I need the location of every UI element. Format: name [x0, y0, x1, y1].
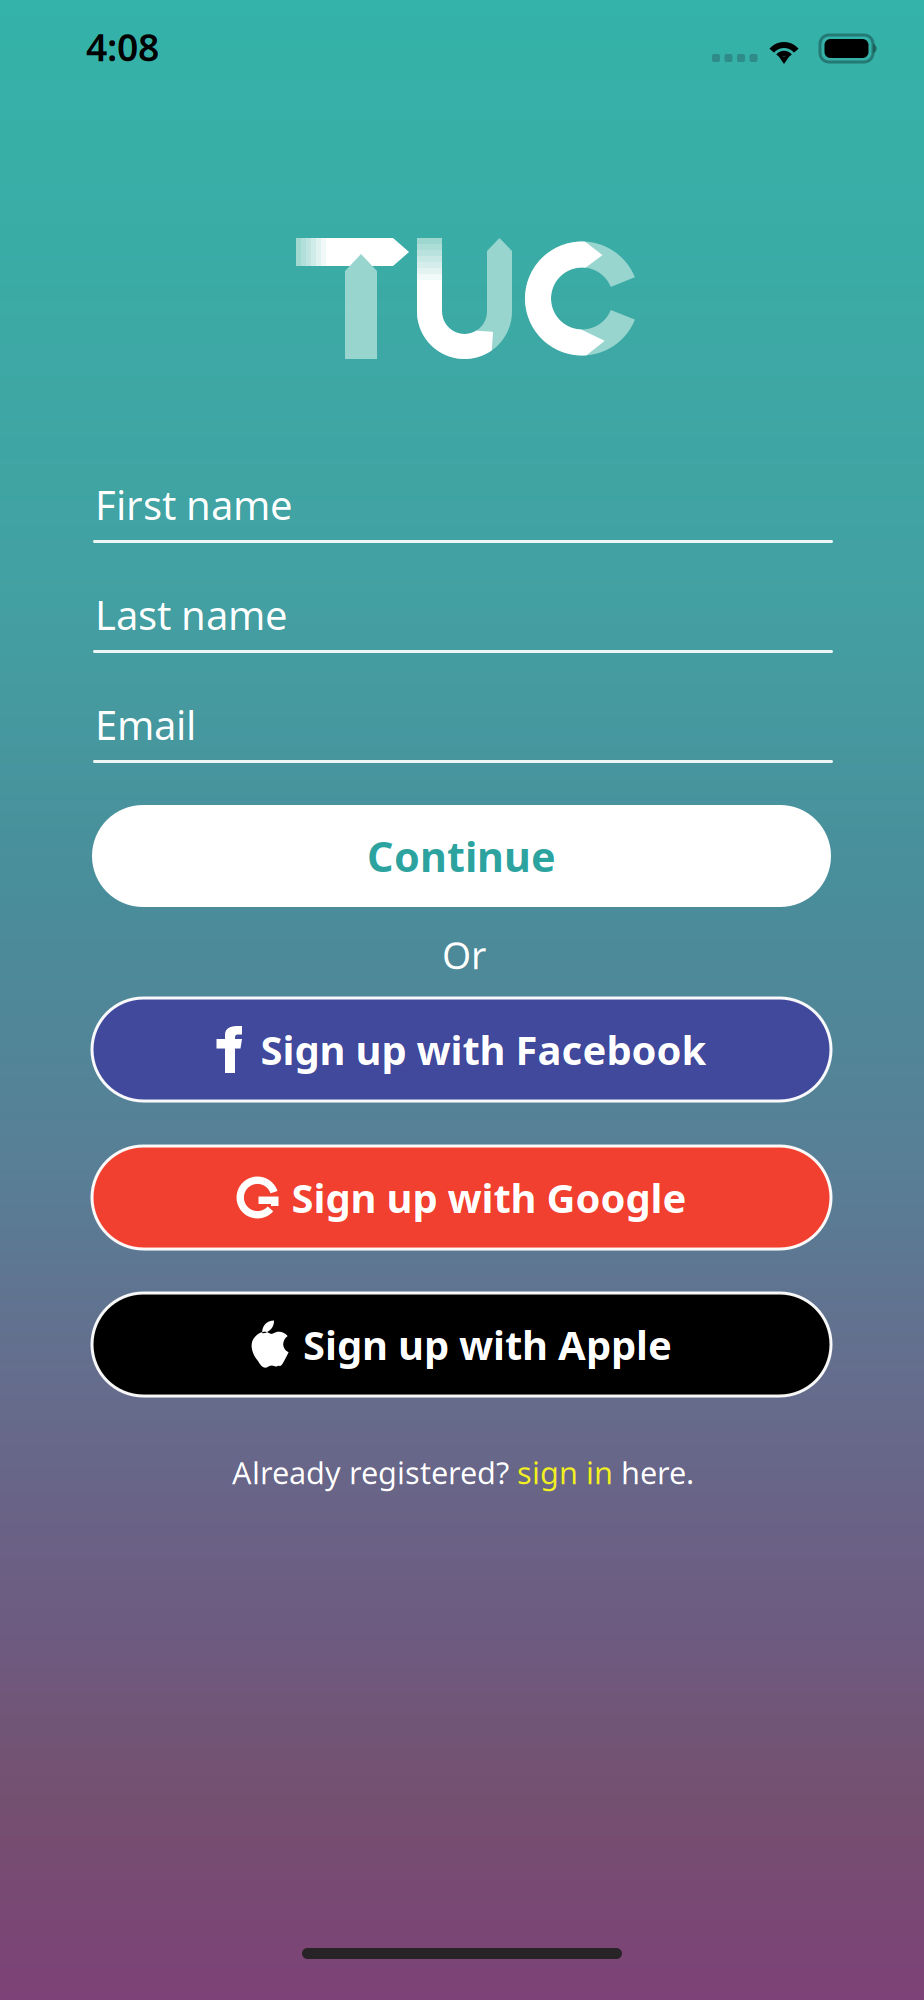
staticText: Sign up with Google: [291, 1171, 686, 1224]
staticText: Already registered?: [232, 1452, 517, 1493]
staticText: Last name: [95, 588, 288, 641]
staticText: Email: [95, 698, 196, 751]
staticText: Sign up with Apple: [303, 1318, 672, 1371]
button[interactable]: Email: [95, 698, 835, 763]
button[interactable]: First name: [95, 478, 835, 543]
button[interactable]: Already registered?: [232, 1452, 694, 1493]
staticText: here.: [613, 1452, 694, 1493]
staticText: Or: [442, 930, 486, 980]
staticText: sign in: [517, 1452, 613, 1493]
staticText: Sign up with Facebook: [260, 1023, 706, 1076]
staticText: 4:08: [86, 22, 159, 72]
button[interactable]: Sign up with Facebook: [92, 998, 831, 1101]
staticText: First name: [95, 478, 293, 531]
button[interactable]: Sign up with Apple: [92, 1293, 831, 1396]
button[interactable]: Sign up with Google: [92, 1146, 831, 1249]
staticText: Continue: [367, 829, 556, 883]
button[interactable]: Last name: [95, 588, 835, 653]
button[interactable]: Continue: [92, 805, 831, 907]
